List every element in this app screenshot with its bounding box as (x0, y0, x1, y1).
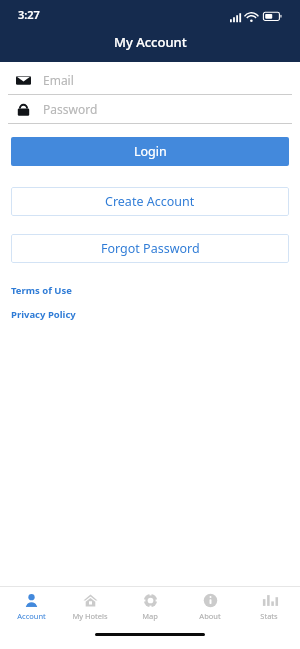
other: About (203, 593, 218, 608)
button[interactable]: Forgot Password (11, 234, 289, 263)
staticText: Privacy Policy (11, 308, 76, 321)
button[interactable]: Stats (240, 593, 298, 621)
staticText: Create Account (105, 193, 195, 210)
other: Account (24, 593, 39, 608)
button[interactable]: Terms of Use (11, 284, 72, 297)
button[interactable]: Email (0, 66, 300, 94)
button[interactable]: Map (121, 593, 179, 621)
other: My Hotels (83, 593, 98, 608)
button[interactable]: My Hotels (61, 593, 119, 621)
staticText: Login (134, 143, 167, 160)
staticText: My Account (114, 33, 187, 51)
other: Stats (262, 593, 277, 608)
other: Map (143, 593, 158, 608)
button[interactable]: Create Account (11, 187, 289, 216)
staticText: Terms of Use (11, 284, 72, 297)
button[interactable]: Password (0, 95, 300, 123)
button[interactable]: Account (2, 593, 60, 621)
staticText: Account (17, 611, 46, 621)
button[interactable]: About (181, 593, 239, 621)
staticText: Map (142, 611, 158, 621)
staticText: About (199, 611, 221, 621)
staticText: My Hotels (72, 611, 108, 621)
button[interactable]: Privacy Policy (11, 308, 76, 321)
button[interactable]: Login (11, 137, 289, 166)
staticText: Forgot Password (101, 240, 200, 257)
staticText: Password (43, 101, 98, 117)
staticText: Stats (260, 611, 278, 621)
staticText: 3:27 (18, 7, 40, 22)
staticText: Email (43, 72, 74, 88)
